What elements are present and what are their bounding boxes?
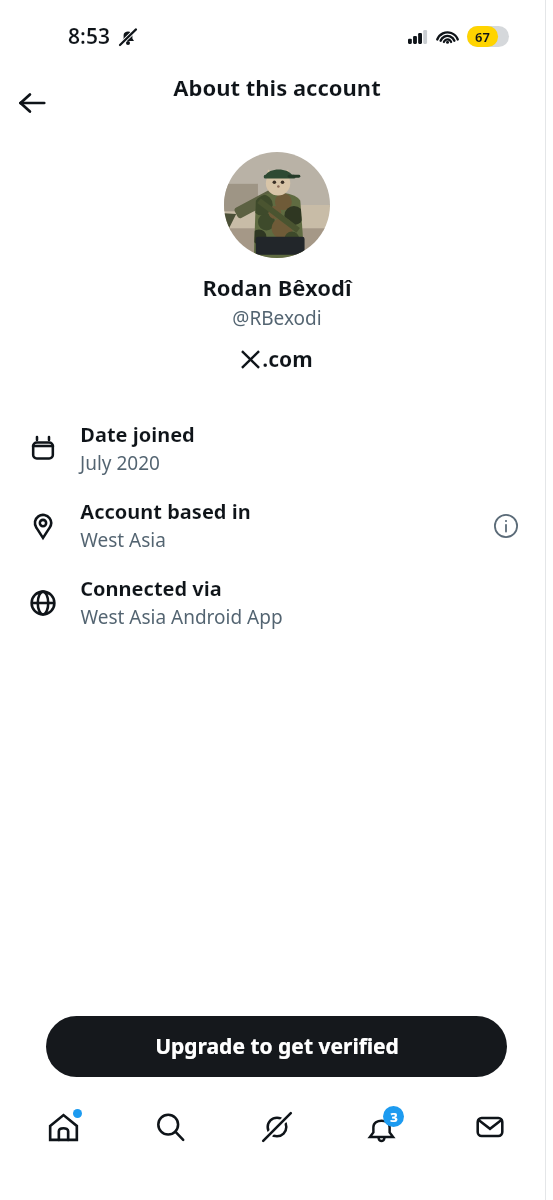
staticText: July 2020 xyxy=(80,450,160,476)
staticText: West Asia Android App xyxy=(80,604,283,630)
staticText: About this account xyxy=(173,72,381,102)
button[interactable]: Search xyxy=(126,1098,214,1156)
staticText: @RBexodi xyxy=(232,305,322,331)
button[interactable]: Home xyxy=(19,1098,107,1156)
staticText: 8:53 xyxy=(68,22,110,51)
button[interactable]: Connected via xyxy=(0,564,553,641)
button[interactable]: More info xyxy=(487,507,525,545)
staticText: West Asia xyxy=(80,527,166,553)
staticText: Upgrade to get verified xyxy=(155,1032,399,1061)
staticText: Rodan Bêxodî xyxy=(202,272,352,302)
staticText: Date joined xyxy=(80,421,195,448)
button[interactable]: Date joined xyxy=(0,410,553,487)
button[interactable]: Notifications xyxy=(339,1098,427,1156)
button[interactable]: Grok xyxy=(233,1098,321,1156)
button[interactable]: Back xyxy=(10,81,54,125)
staticText: Connected via xyxy=(80,575,222,602)
button[interactable]: Upgrade to get verified xyxy=(46,1016,507,1077)
button[interactable]: Account based in xyxy=(0,487,553,564)
staticText: .com xyxy=(262,345,313,374)
staticText: Account based in xyxy=(80,498,251,525)
staticText: 3 xyxy=(390,1108,398,1126)
button[interactable]: Messages xyxy=(446,1098,534,1156)
staticText: 67 xyxy=(475,28,490,46)
